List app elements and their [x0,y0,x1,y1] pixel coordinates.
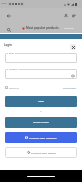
staticText: Password [9,68,18,71]
staticText: Most popular products [26,26,59,30]
button[interactable]: Login [5,96,77,107]
staticText: Continue with Google [31,151,56,154]
button[interactable]: Forgot password? [63,87,77,89]
button[interactable]: Back [4,11,13,20]
button[interactable] [5,69,77,79]
button[interactable]: Search [4,25,13,34]
staticText: or [40,110,42,112]
button[interactable]: Close [70,44,76,50]
button[interactable]: Menu [69,11,78,20]
staticText: Remember me [9,87,20,89]
staticText: Login [38,100,44,103]
button[interactable]: Account [61,11,70,20]
staticText: Continue with Facebook [29,136,57,139]
staticText: 12:30 [1,2,7,5]
button[interactable]: Create account [5,117,77,128]
button[interactable] [5,53,77,63]
staticText: Create account [33,121,49,124]
button[interactable]: Show password [70,73,75,78]
button[interactable]: Continue with Google [5,147,77,158]
button[interactable]: Get them now [64,27,74,29]
staticText: Login [4,43,12,47]
staticText: Email [9,52,14,55]
button[interactable]: Remember me [5,86,20,89]
button[interactable]: Continue with Facebook [5,132,77,143]
